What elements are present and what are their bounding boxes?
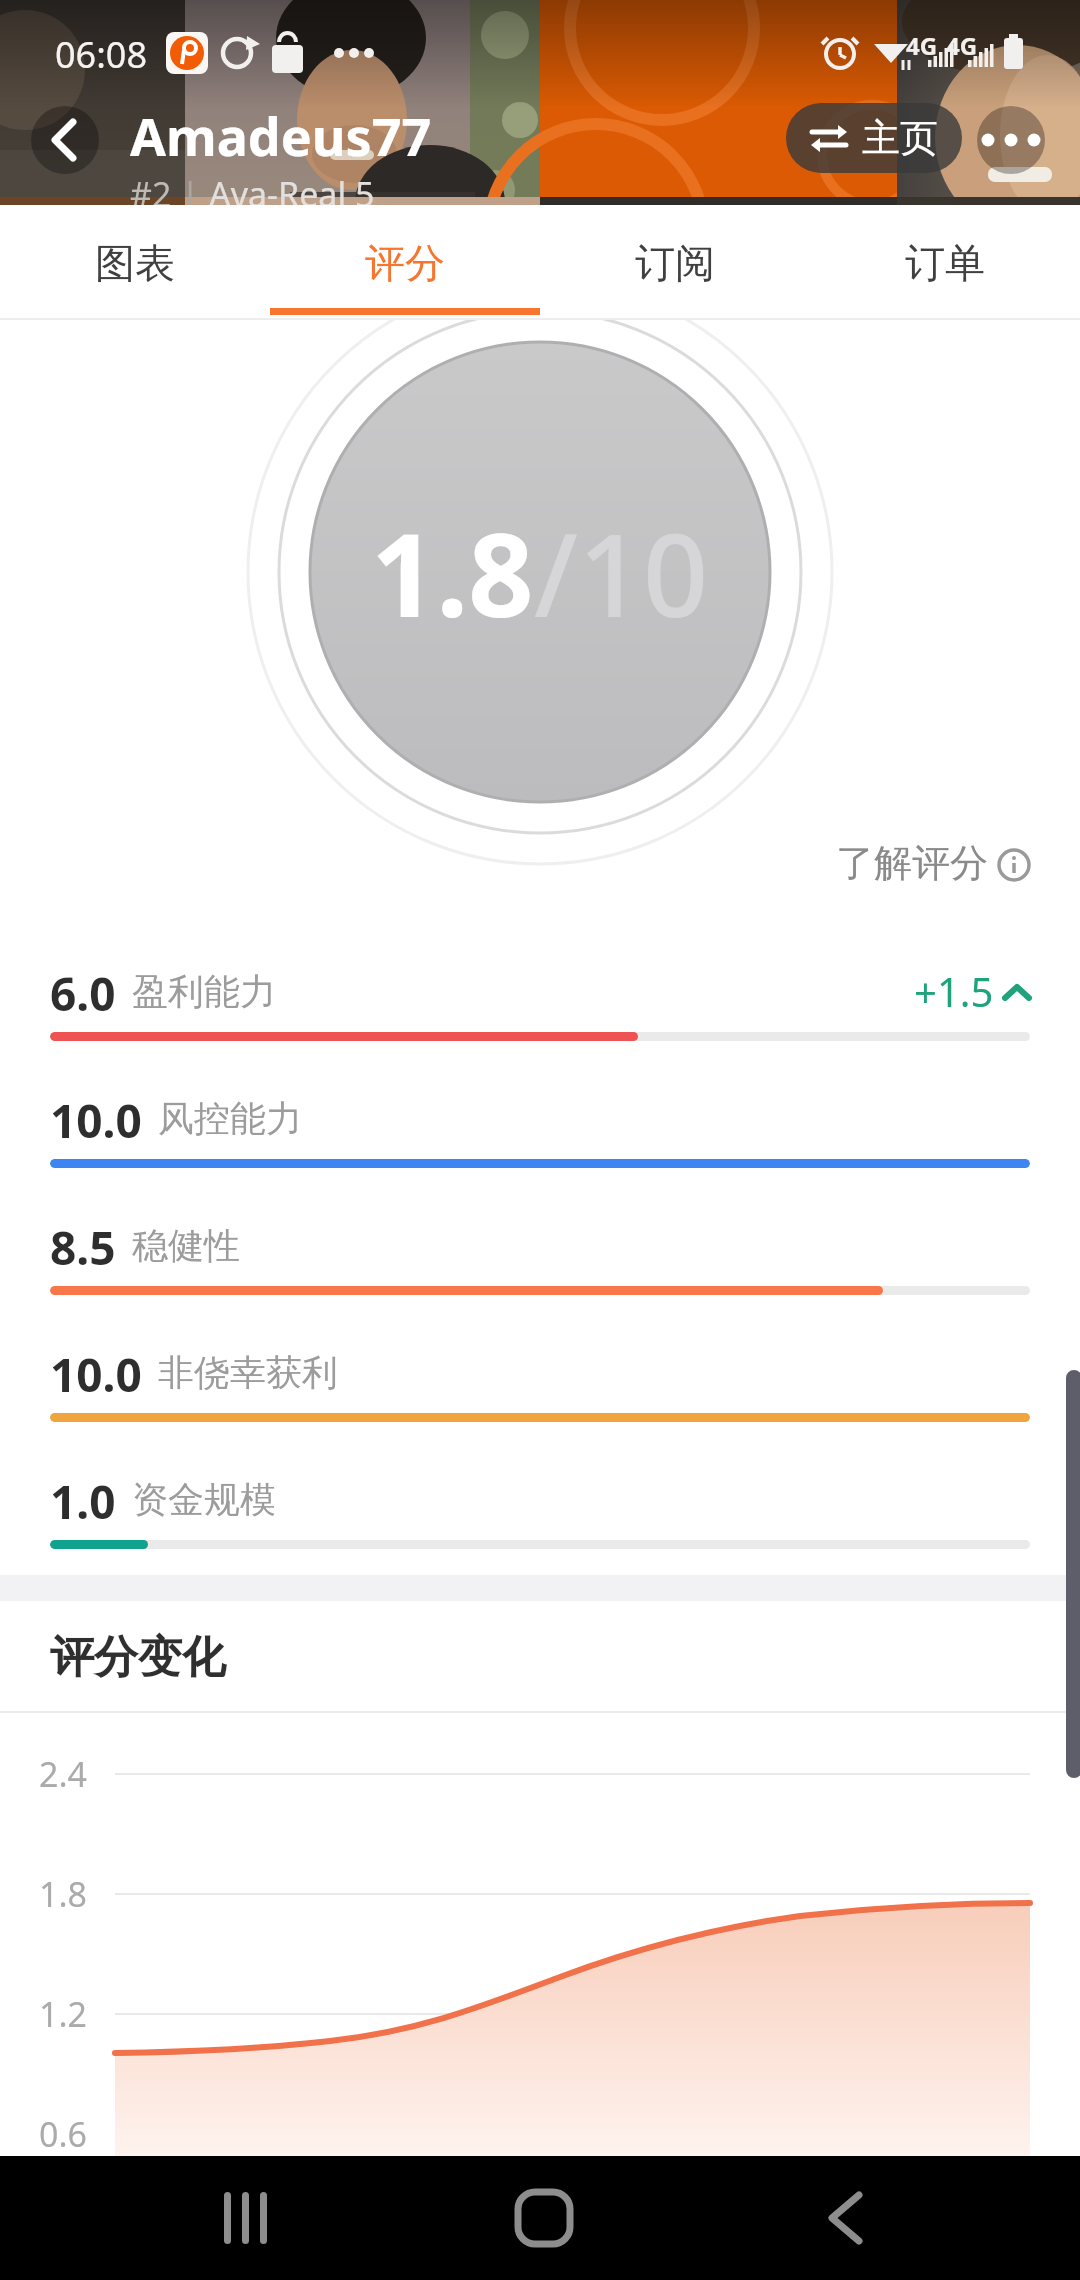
staticText: 8.5 — [50, 1216, 116, 1274]
staticText: /10 — [534, 495, 709, 650]
staticText: 评分 — [365, 238, 445, 288]
staticText: 非侥幸获利 — [158, 1350, 338, 1395]
staticText: 2.4 — [39, 1751, 88, 1797]
staticText: 评分变化 — [50, 1630, 226, 1685]
staticText: 4G — [946, 29, 978, 62]
button[interactable]: 了解评分 — [836, 839, 1032, 887]
staticText: 06:08 — [55, 30, 148, 79]
staticText: 稳健性 — [132, 1223, 240, 1268]
staticText: | — [172, 171, 209, 217]
staticText: 4G — [906, 29, 938, 62]
staticText: 了解评分 — [836, 839, 988, 887]
button[interactable]: 订阅 — [540, 205, 810, 320]
staticText: #2 — [130, 171, 172, 217]
staticText: 订单 — [905, 238, 985, 288]
button[interactable] — [31, 106, 99, 174]
staticText: 0.6 — [39, 2111, 88, 2157]
staticText: 盈利能力 — [132, 969, 276, 1014]
button[interactable] — [494, 2168, 594, 2268]
staticText: 1.8 — [39, 1871, 88, 1917]
staticText: 1.8 — [371, 495, 534, 650]
button[interactable] — [795, 2168, 895, 2268]
button[interactable] — [196, 2168, 296, 2268]
button[interactable]: 订单 — [810, 205, 1080, 320]
staticText: Ava-Real 5 — [209, 171, 375, 217]
staticText: Amadeus77 — [130, 100, 432, 171]
button[interactable]: 评分 — [270, 205, 540, 320]
staticText: 风控能力 — [158, 1096, 302, 1141]
button[interactable]: 图表 — [0, 205, 270, 320]
staticText: 6.0 — [50, 962, 116, 1020]
staticText: 1.0 — [50, 1470, 116, 1528]
staticText: 资金规模 — [132, 1477, 276, 1522]
staticText: 1.2 — [39, 1991, 88, 2037]
staticText: 图表 — [95, 238, 175, 288]
button[interactable] — [977, 106, 1045, 174]
staticText: 10.0 — [50, 1089, 142, 1147]
staticText: 订阅 — [635, 238, 715, 288]
staticText: +1.5 — [914, 964, 994, 1018]
staticText: 主页 — [862, 114, 938, 162]
staticText: 10.0 — [50, 1343, 142, 1401]
button[interactable]: 主页 — [786, 103, 962, 173]
